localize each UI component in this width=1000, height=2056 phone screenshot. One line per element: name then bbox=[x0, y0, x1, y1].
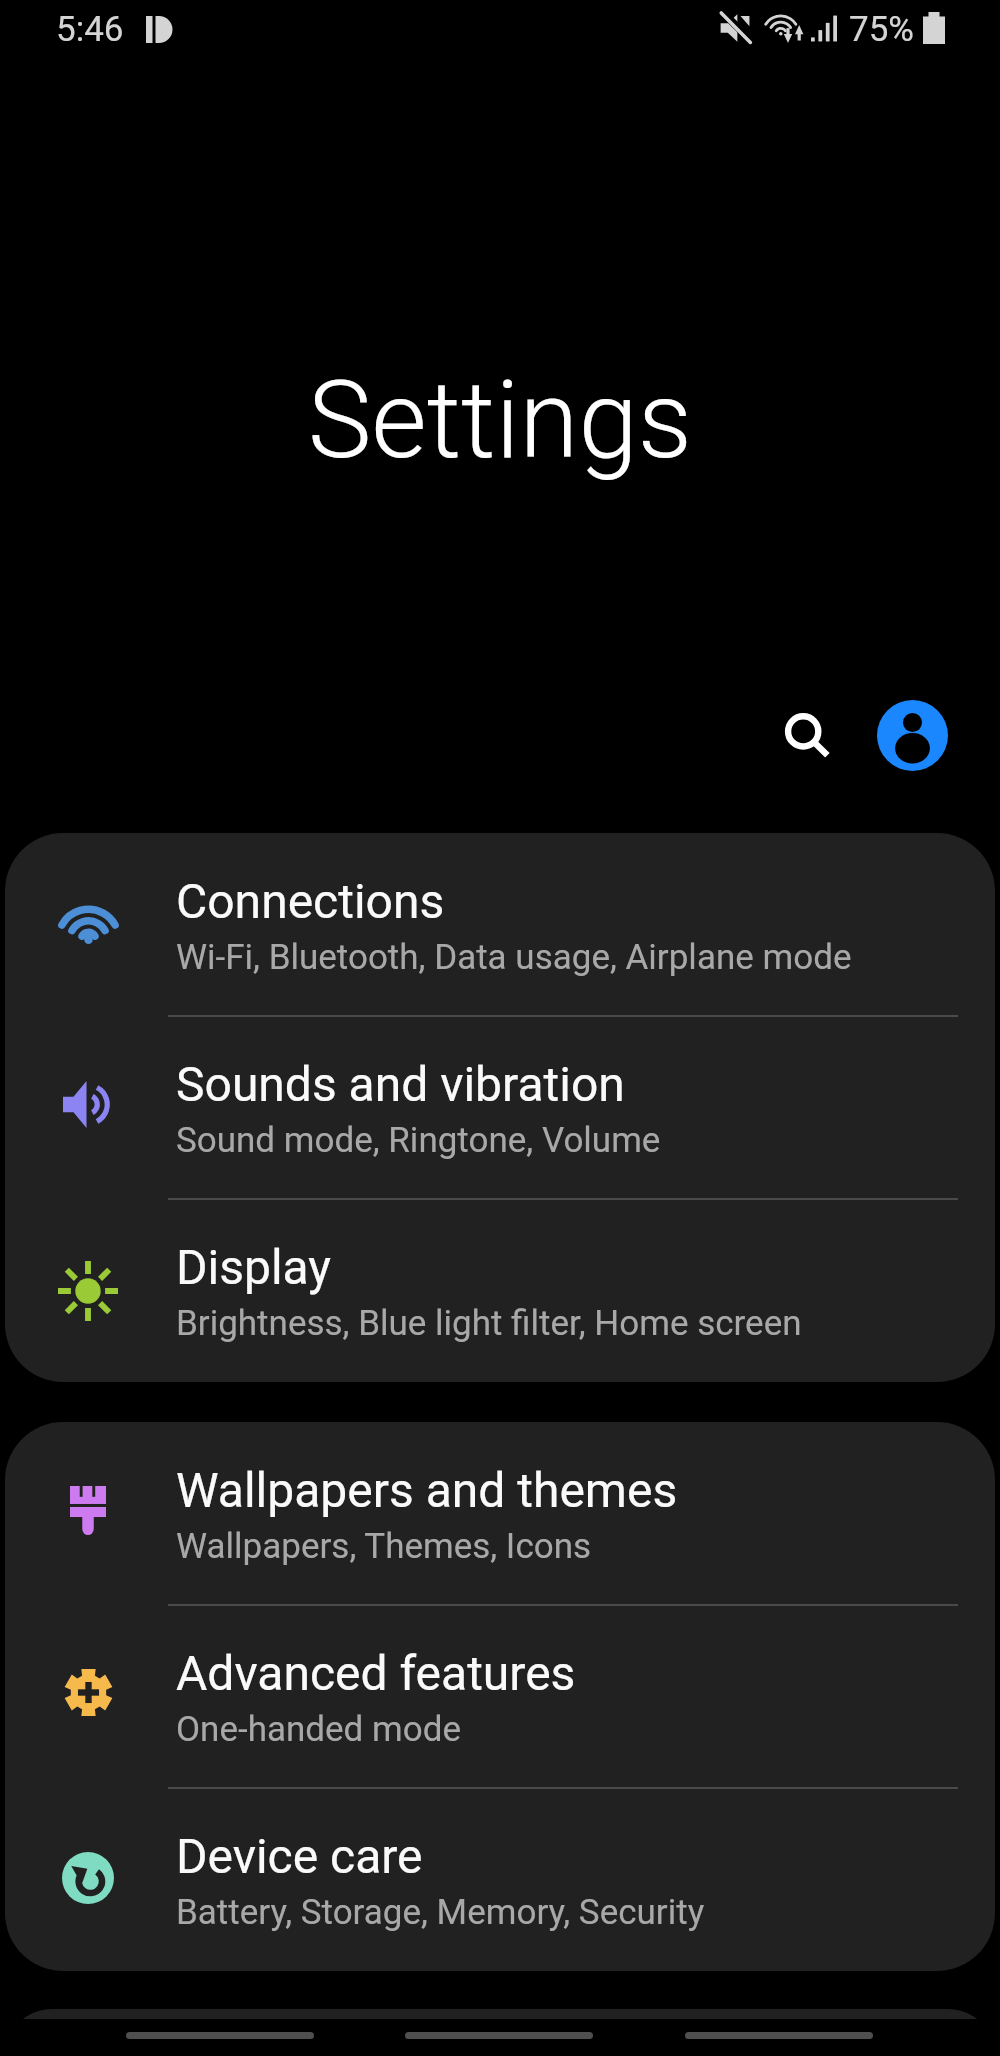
button[interactable]: Connections bbox=[5, 833, 995, 1016]
button[interactable]: Recents bbox=[126, 2032, 314, 2039]
staticText: Settings bbox=[0, 358, 1000, 483]
staticText: Sounds and vibration bbox=[176, 1056, 625, 1112]
button[interactable]: Back bbox=[685, 2032, 873, 2039]
button[interactable]: Wallpapers and themes bbox=[5, 1422, 995, 1605]
button[interactable]: Display bbox=[5, 1199, 995, 1382]
button[interactable]: Device care bbox=[5, 1788, 995, 1971]
button[interactable]: Account bbox=[868, 691, 957, 780]
staticText: Advanced features bbox=[176, 1645, 576, 1701]
button[interactable]: Sounds and vibration bbox=[5, 1016, 995, 1199]
staticText: 75% bbox=[849, 9, 914, 50]
staticText: Device care bbox=[176, 1828, 423, 1884]
staticText: Sound mode, Ringtone, Volume bbox=[176, 1120, 661, 1161]
staticText: 5:46 bbox=[56, 9, 124, 50]
button[interactable]: Home bbox=[405, 2032, 593, 2039]
staticText: Wallpapers and themes bbox=[176, 1462, 678, 1518]
staticText: One-handed mode bbox=[176, 1709, 461, 1750]
staticText: Brightness, Blue light filter, Home scre… bbox=[176, 1303, 802, 1344]
staticText: Wallpapers, Themes, Icons bbox=[176, 1526, 592, 1567]
button[interactable]: Search bbox=[766, 694, 847, 775]
staticText: Wi-Fi, Bluetooth, Data usage, Airplane m… bbox=[176, 937, 852, 978]
staticText: Connections bbox=[176, 873, 445, 929]
staticText: Display bbox=[176, 1239, 332, 1295]
button[interactable]: Advanced features bbox=[5, 1605, 995, 1788]
staticText: Battery, Storage, Memory, Security bbox=[176, 1892, 705, 1933]
